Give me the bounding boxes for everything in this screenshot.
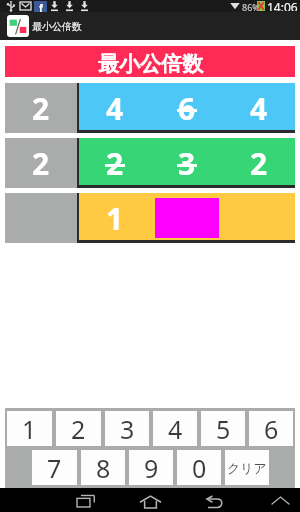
button[interactable]: 7 bbox=[32, 450, 77, 485]
staticText: 9 bbox=[144, 451, 159, 485]
staticText: クリア bbox=[227, 460, 267, 476]
staticText: 6 bbox=[264, 412, 279, 446]
staticText: 3 bbox=[120, 412, 135, 446]
staticText: 3 bbox=[178, 143, 196, 184]
staticText: 5 bbox=[216, 412, 231, 446]
staticText: 14:06 bbox=[267, 0, 298, 11]
button[interactable]: Hide keyboard bbox=[272, 497, 289, 504]
staticText: 2 bbox=[250, 143, 268, 184]
button[interactable]: 3 bbox=[105, 411, 149, 446]
staticText: f bbox=[39, 1, 43, 12]
staticText: 0 bbox=[192, 451, 207, 485]
staticText: 4 bbox=[250, 88, 268, 129]
button[interactable]: Back bbox=[206, 496, 223, 508]
staticText: 最小公倍数 bbox=[98, 51, 203, 77]
staticText: 86% bbox=[242, 1, 260, 13]
other: App icon bbox=[7, 15, 29, 37]
button[interactable]: 0 bbox=[177, 450, 221, 485]
button[interactable]: 最小公倍数 bbox=[5, 46, 295, 77]
staticText: 1 bbox=[106, 198, 124, 239]
button[interactable]: 2 bbox=[5, 138, 295, 188]
staticText: 7 bbox=[47, 451, 62, 485]
button[interactable]: 9 bbox=[129, 450, 173, 485]
staticText: 2 bbox=[71, 412, 86, 446]
staticText: 2 bbox=[32, 143, 50, 184]
staticText: 8 bbox=[96, 451, 111, 485]
staticText: 2 bbox=[32, 88, 50, 129]
staticText: 1 bbox=[22, 412, 37, 446]
button[interactable]: 4 bbox=[153, 411, 197, 446]
staticText: 最小公倍数 bbox=[32, 20, 82, 33]
button[interactable]: 6 bbox=[249, 411, 293, 446]
staticText: 2 bbox=[106, 143, 124, 184]
staticText: 4 bbox=[168, 412, 183, 446]
button[interactable]: 8 bbox=[81, 450, 125, 485]
button[interactable]: 1 bbox=[5, 193, 295, 243]
button[interactable]: 2 bbox=[5, 83, 295, 133]
button[interactable]: 2 bbox=[56, 411, 101, 446]
button[interactable]: 1 bbox=[7, 411, 52, 446]
staticText: 6 bbox=[178, 88, 196, 129]
button[interactable]: Recent apps bbox=[77, 495, 95, 507]
button[interactable]: クリア bbox=[225, 450, 269, 485]
staticText: 4 bbox=[106, 88, 124, 129]
button[interactable]: 5 bbox=[201, 411, 245, 446]
button[interactable]: Home bbox=[140, 496, 161, 508]
